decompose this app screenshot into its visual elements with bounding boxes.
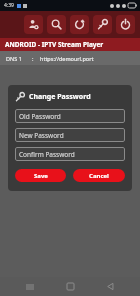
staticText: ANDROID - IPTV Stream Player (5, 40, 104, 49)
button[interactable]: Old Password (15, 109, 125, 123)
button[interactable]: Back (100, 277, 120, 296)
staticText: 4:39 (4, 2, 14, 9)
button[interactable]: Change password (93, 15, 112, 34)
staticText: DNS 1 (6, 55, 22, 62)
button[interactable]: New Password (15, 128, 125, 142)
staticText: Change Password (29, 92, 91, 102)
staticText: : (32, 55, 34, 62)
button[interactable]: Cancel (73, 169, 125, 182)
button[interactable]: Power (116, 15, 135, 34)
button[interactable]: ANDROID - IPTV Stream Player (0, 38, 140, 51)
staticText: Save (34, 172, 48, 180)
button[interactable]: Account settings (24, 15, 43, 34)
button[interactable]: Confirm Password (15, 147, 125, 161)
button[interactable]: Search (47, 15, 66, 34)
staticText: New Password (19, 131, 64, 140)
button[interactable]: Refresh (70, 15, 89, 34)
staticText: https://demourl.port (40, 55, 94, 62)
button[interactable]: DNS 1 (0, 51, 140, 65)
button[interactable]: Recents (20, 277, 40, 296)
staticText: Cancel (89, 172, 109, 180)
staticText: Old Password (19, 112, 61, 121)
staticText: Confirm Password (19, 150, 75, 159)
button[interactable]: Home (60, 277, 80, 296)
button[interactable]: Save (15, 169, 66, 182)
